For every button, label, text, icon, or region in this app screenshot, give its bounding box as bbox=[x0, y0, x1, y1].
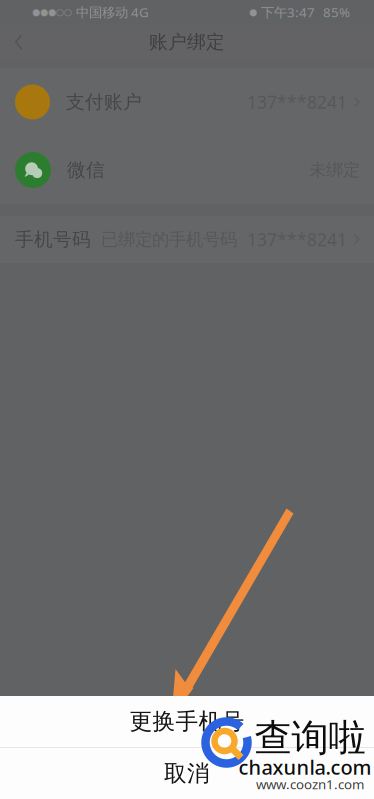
staticText: 微信 bbox=[67, 158, 105, 181]
staticText: 未绑定 bbox=[309, 159, 360, 181]
staticText: 取消 bbox=[164, 760, 210, 787]
staticText: 更换手机号 bbox=[129, 708, 244, 735]
staticText: www.coozn1.com bbox=[256, 775, 364, 793]
staticText: 中国移动 4G bbox=[76, 3, 149, 21]
staticText: 85% bbox=[323, 3, 350, 21]
staticText: 账户绑定 bbox=[149, 30, 225, 53]
staticText: chaxunla.com bbox=[238, 754, 371, 780]
button[interactable]: 手机号码 bbox=[0, 216, 374, 263]
button[interactable]: 取消 bbox=[0, 748, 374, 799]
staticText: 137***8241 bbox=[247, 90, 347, 113]
staticText: ●●●○○ bbox=[32, 7, 72, 17]
staticText: ● bbox=[249, 7, 257, 17]
staticText: 下午3:47 bbox=[261, 3, 315, 21]
button[interactable]: 微信 bbox=[0, 136, 374, 204]
staticText: 查询啦 bbox=[254, 715, 365, 761]
staticText: 支付账户 bbox=[66, 90, 142, 113]
button[interactable]: 支付账户 bbox=[0, 68, 374, 136]
staticText: 已绑定的手机号码 bbox=[101, 229, 237, 250]
staticText: 137***8241 bbox=[247, 228, 347, 251]
button[interactable]: 更换手机号 bbox=[0, 696, 374, 747]
staticText: 手机号码 bbox=[15, 228, 91, 251]
